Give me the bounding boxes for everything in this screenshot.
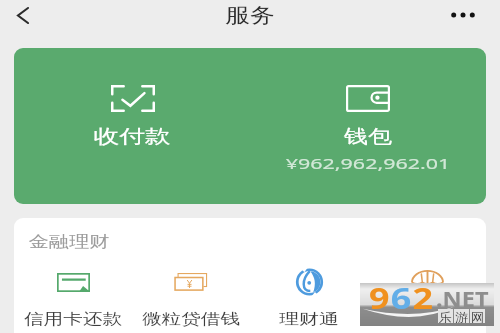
staticText: 9 [369, 279, 391, 317]
button[interactable]: 微粒贷借钱 [132, 268, 250, 329]
staticText: 网 [471, 309, 484, 323]
staticText: 微粒贷借钱 [114, 310, 268, 329]
button[interactable]: Back [7, 0, 39, 30]
staticText: 2 [412, 279, 434, 317]
staticText: 6 [391, 279, 413, 317]
staticText: 收付款 [14, 125, 291, 149]
staticText: 乐 [439, 309, 452, 323]
staticText: .NET [436, 285, 489, 314]
button[interactable]: 收付款 [14, 48, 250, 204]
button[interactable]: 保险 [368, 268, 486, 329]
staticText: 保险 [350, 310, 486, 329]
staticText: 金融理财 [14, 232, 145, 252]
button[interactable]: 信用卡还款 [14, 268, 132, 329]
staticText: 信用卡还款 [14, 310, 150, 329]
staticText: ¥962,962,962.01 [199, 153, 486, 173]
staticText: 服务 [0, 3, 500, 28]
staticText: 理财通 [230, 310, 387, 329]
staticText: 钱包 [218, 125, 486, 149]
button[interactable]: 钱包 [250, 48, 486, 204]
button[interactable]: More options [442, 0, 484, 30]
staticText: 游 [455, 309, 468, 323]
button[interactable]: 理财通 [250, 268, 368, 329]
